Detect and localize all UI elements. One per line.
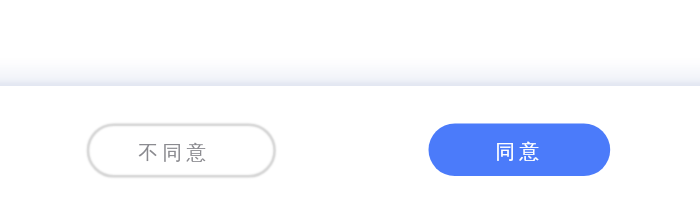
button[interactable]: 同意 xyxy=(428,123,611,176)
staticText: 不同意 xyxy=(138,140,211,165)
staticText: 同意 xyxy=(495,139,544,164)
button[interactable]: 不同意 xyxy=(87,123,275,177)
